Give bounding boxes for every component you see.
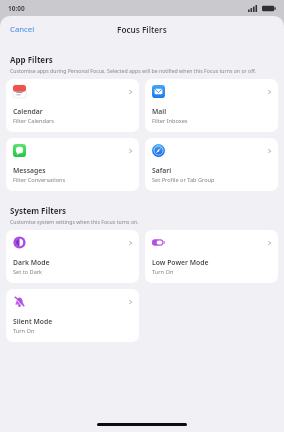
- staticText: Customise apps during Personal Focus. Se…: [10, 67, 257, 74]
- staticText: Filter Conversations: [13, 176, 66, 184]
- staticText: Messages: [13, 166, 46, 175]
- button[interactable]: Mail: [145, 79, 278, 132]
- staticText: Set Profile or Tab Group: [152, 176, 215, 184]
- staticText: Dark Mode: [13, 258, 50, 267]
- button[interactable]: Silent Mode: [6, 289, 139, 342]
- staticText: Calendar: [13, 107, 43, 116]
- staticText: 10:00: [8, 4, 25, 13]
- staticText: Customise system settings when this Focu…: [10, 218, 139, 225]
- staticText: App Filters: [10, 54, 53, 65]
- staticText: Set to Dark: [13, 268, 43, 276]
- staticText: Mail: [152, 107, 167, 116]
- button[interactable]: Dark Mode: [6, 230, 139, 283]
- button[interactable]: Messages: [6, 138, 139, 191]
- staticText: Focus Filters: [117, 24, 167, 35]
- staticText: Filter Inboxes: [152, 117, 188, 125]
- staticText: Low Power Mode: [152, 258, 209, 267]
- button[interactable]: Safari: [145, 138, 278, 191]
- button[interactable]: Low Power Mode: [145, 230, 278, 283]
- staticText: Filter Calendars: [13, 117, 55, 125]
- staticText: Safari: [152, 166, 172, 175]
- button[interactable]: Cancel: [6, 21, 39, 38]
- staticText: Turn On: [13, 327, 35, 335]
- staticText: Cancel: [10, 24, 35, 35]
- staticText: Turn On: [152, 268, 174, 276]
- staticText: System Filters: [10, 205, 67, 216]
- staticText: Silent Mode: [13, 317, 53, 326]
- button[interactable]: Calendar: [6, 79, 139, 132]
